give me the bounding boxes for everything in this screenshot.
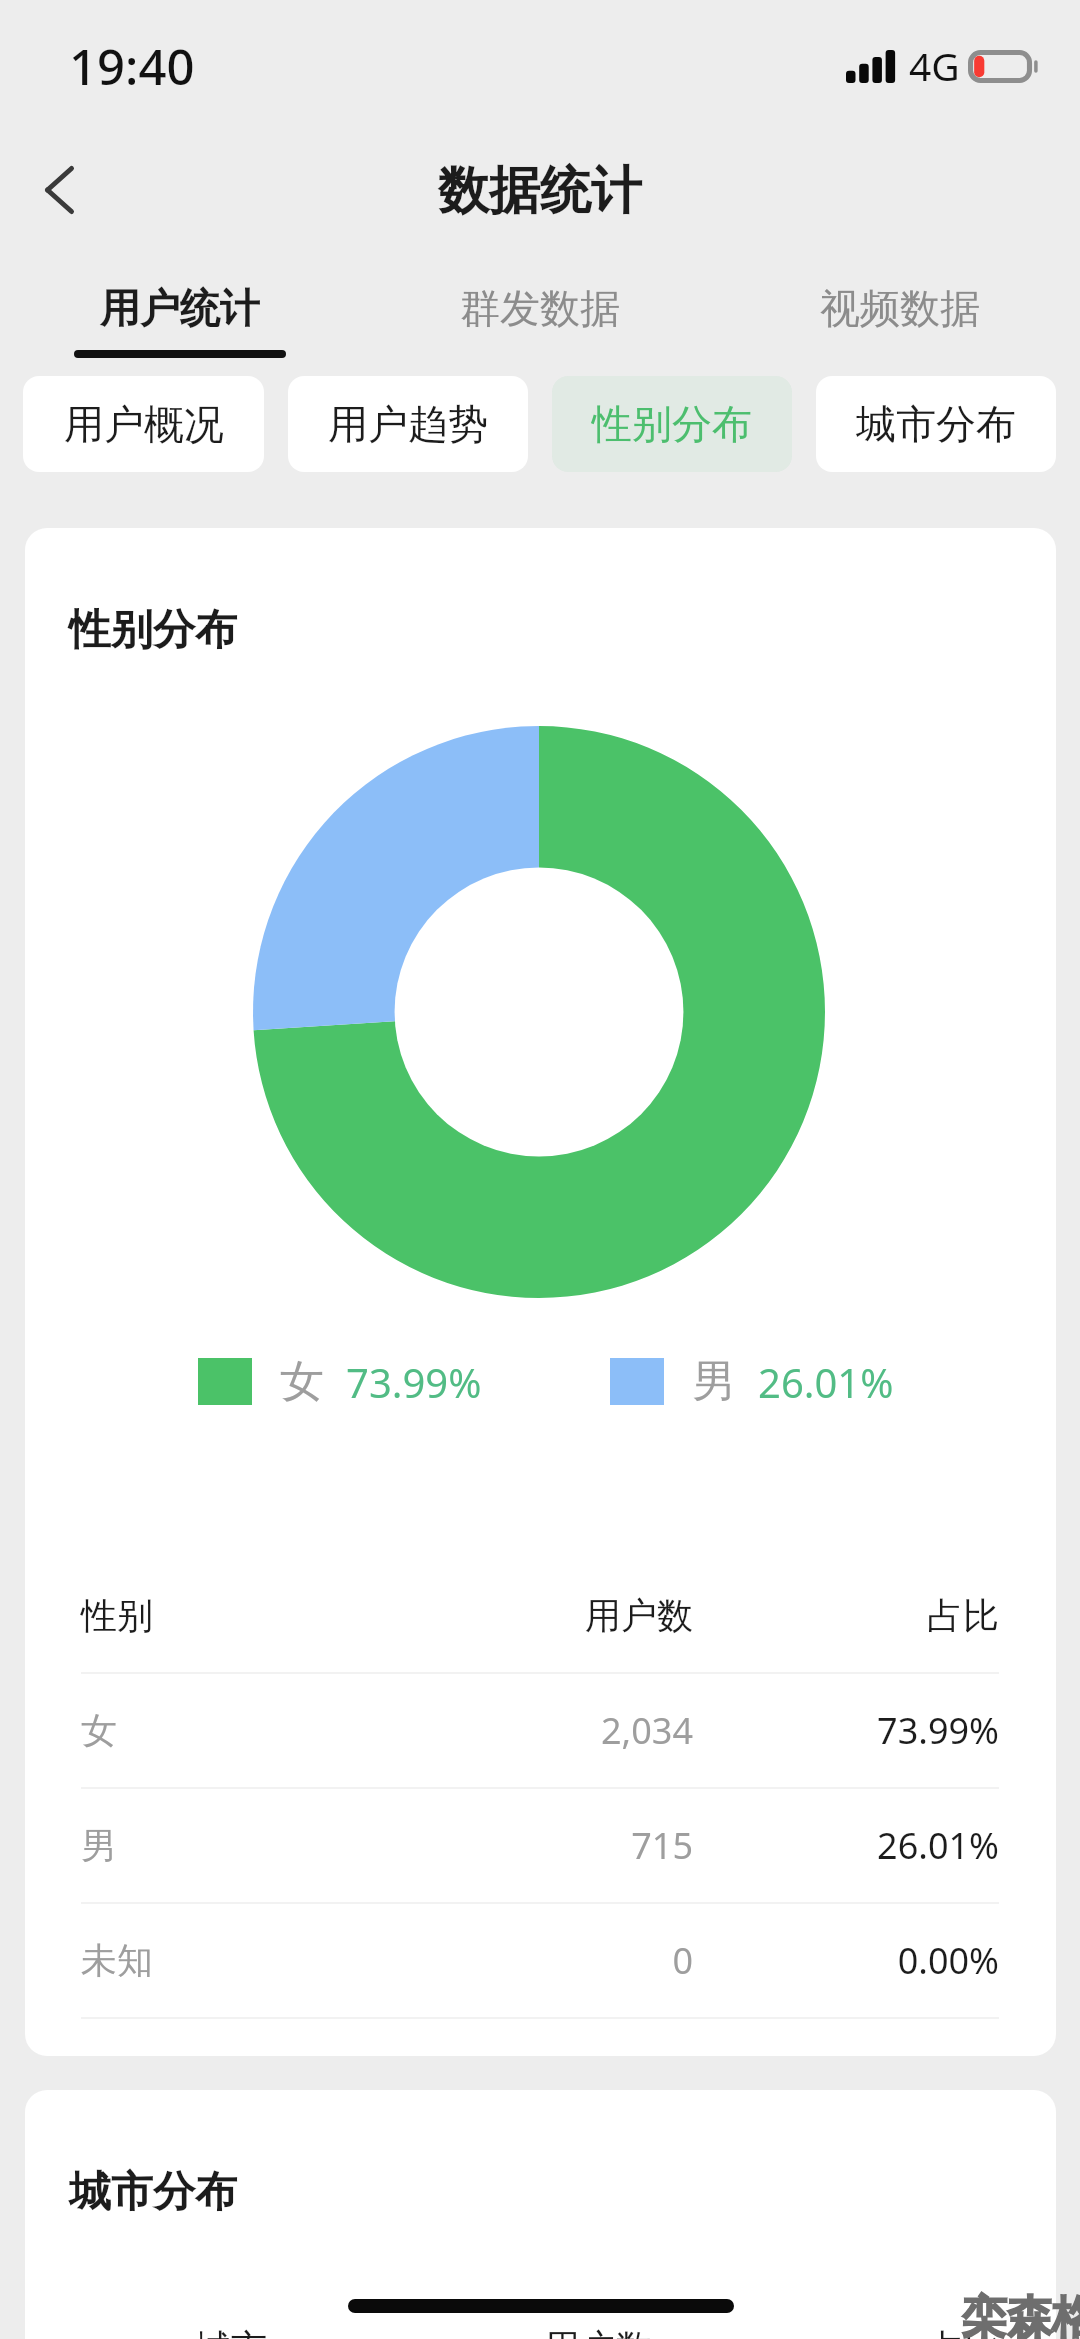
staticText: 栾森格 bbox=[962, 2290, 1080, 2339]
staticText: 用户数 bbox=[387, 1593, 693, 1638]
staticText: 城市 bbox=[195, 2325, 464, 2339]
staticText: 未知 bbox=[81, 1938, 387, 1983]
staticText: 2,034 bbox=[387, 1706, 693, 1755]
staticText: 数据统计 bbox=[0, 159, 1080, 223]
staticText: 男 bbox=[81, 1823, 387, 1868]
staticText: 用户趋势 bbox=[328, 399, 488, 449]
staticText: 占比 bbox=[732, 2325, 1000, 2339]
button[interactable]: 性别 bbox=[81, 1558, 999, 1673]
staticText: 0.00% bbox=[693, 1936, 999, 1985]
button[interactable]: 男 bbox=[81, 1788, 999, 1903]
staticText: 视频数据 bbox=[820, 283, 980, 333]
staticText: 0 bbox=[387, 1936, 693, 1985]
button[interactable]: 用户趋势 bbox=[288, 376, 528, 472]
staticText: 性别 bbox=[81, 1593, 387, 1638]
staticText: 女 bbox=[81, 1708, 387, 1753]
staticText: 26.01% bbox=[693, 1821, 999, 1870]
button[interactable]: 城市 bbox=[195, 2290, 1000, 2339]
staticText: 城市分布 bbox=[856, 399, 1016, 449]
staticText: 715 bbox=[387, 1821, 693, 1870]
staticText: 73.99% bbox=[346, 1355, 482, 1409]
button[interactable]: Back bbox=[11, 142, 107, 238]
button[interactable]: 视频数据 bbox=[720, 262, 1080, 362]
button[interactable]: 性别分布 bbox=[552, 376, 792, 472]
button[interactable]: 未知 bbox=[81, 1903, 999, 2018]
button[interactable]: 城市分布 bbox=[816, 376, 1056, 472]
button[interactable]: 女 bbox=[81, 1673, 999, 1788]
staticText: 女 bbox=[280, 1354, 324, 1409]
staticText: 4G bbox=[909, 39, 960, 92]
staticText: 城市分布 bbox=[69, 2166, 237, 2219]
staticText: 群发数据 bbox=[460, 283, 620, 333]
button[interactable]: 用户统计 bbox=[0, 262, 360, 362]
button[interactable]: 群发数据 bbox=[360, 262, 720, 362]
staticText: 用户统计 bbox=[100, 283, 260, 333]
staticText: 用户概况 bbox=[64, 399, 224, 449]
button[interactable]: 用户概况 bbox=[23, 376, 264, 472]
staticText: 占比 bbox=[693, 1593, 999, 1638]
staticText: 男 bbox=[692, 1354, 736, 1409]
staticText: 性别分布 bbox=[592, 399, 752, 449]
staticText: 性别分布 bbox=[69, 604, 237, 657]
button[interactable]: 男 bbox=[610, 1354, 894, 1409]
button[interactable]: 女 bbox=[198, 1354, 482, 1409]
staticText: 26.01% bbox=[758, 1355, 894, 1409]
staticText: 73.99% bbox=[693, 1706, 999, 1755]
staticText: 用户数 bbox=[464, 2325, 732, 2339]
staticText: 19:40 bbox=[69, 33, 195, 100]
